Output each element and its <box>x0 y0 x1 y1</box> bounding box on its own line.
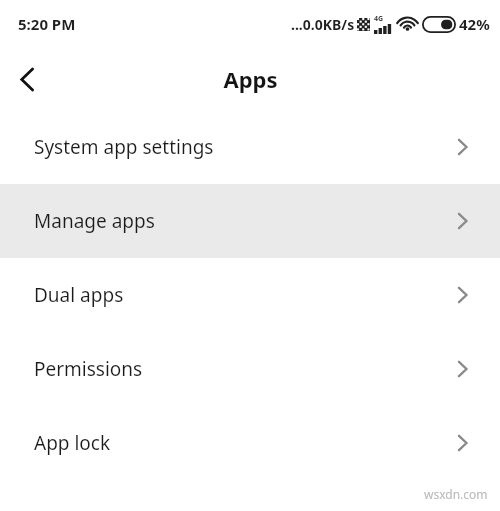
button[interactable]: Dual apps <box>0 258 500 332</box>
staticText: App lock <box>34 430 457 456</box>
staticText: Dual apps <box>34 282 457 308</box>
staticText: Permissions <box>34 356 457 382</box>
staticText: 5:20 PM <box>18 14 76 34</box>
staticText: System app settings <box>34 134 457 160</box>
button[interactable]: System app settings <box>0 110 500 184</box>
staticText: Manage apps <box>34 208 457 234</box>
staticText: ...0.0KB/s <box>291 15 355 34</box>
button[interactable]: App lock <box>0 406 500 480</box>
button[interactable]: Manage apps <box>0 184 500 258</box>
staticText: 4G <box>374 14 384 24</box>
button[interactable]: Permissions <box>0 332 500 406</box>
staticText: wsxdn.com <box>424 486 488 502</box>
staticText: Apps <box>223 64 278 94</box>
staticText: 42% <box>459 14 490 34</box>
button[interactable]: Back <box>0 52 54 106</box>
